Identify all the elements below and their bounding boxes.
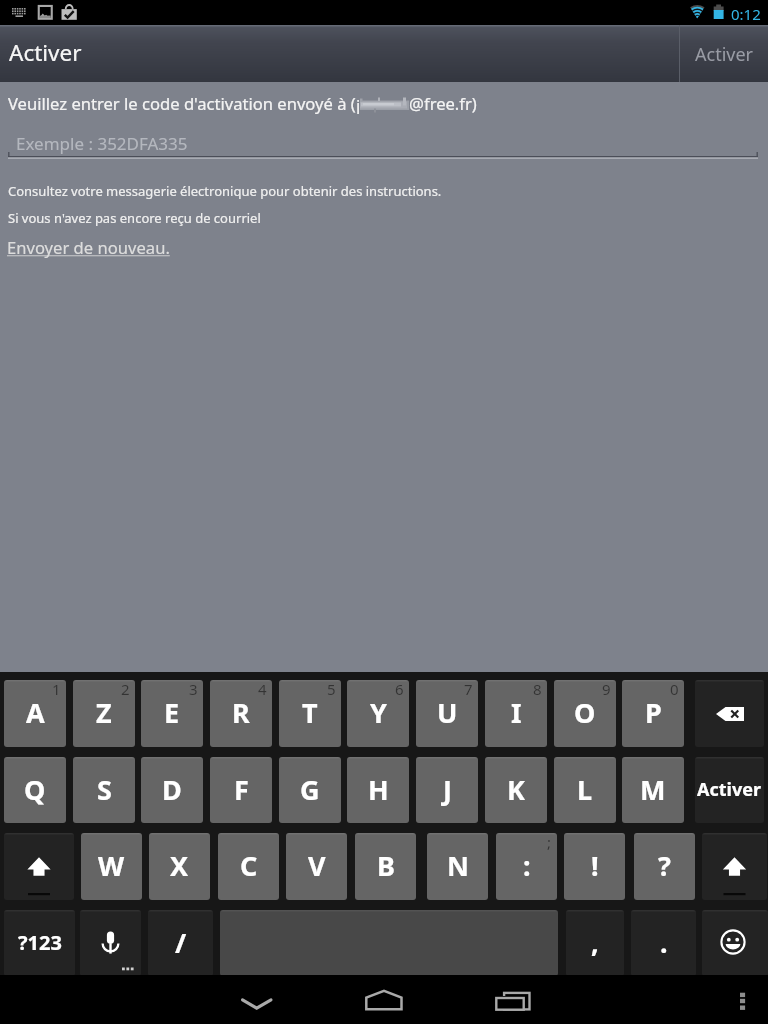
button[interactable]: Recents: [468, 975, 558, 1024]
staticText: @free.fr): [409, 92, 477, 115]
button[interactable]: C: [218, 833, 279, 900]
button[interactable]: [220, 910, 558, 976]
button[interactable]: Home: [339, 975, 429, 1024]
staticText: Si vous n'avez pas encore reçu de courri…: [8, 209, 261, 227]
staticText: J: [443, 771, 452, 808]
button[interactable]: 3: [141, 680, 203, 747]
staticText: !: [591, 847, 599, 884]
staticText: V: [308, 847, 326, 884]
staticText: Q: [24, 771, 46, 808]
button[interactable]: ?123: [4, 910, 75, 976]
button[interactable]: X: [149, 833, 210, 900]
staticText: W: [98, 847, 125, 884]
staticText: /: [175, 924, 187, 961]
button[interactable]: J: [416, 757, 478, 823]
button[interactable]: /: [148, 910, 213, 976]
staticText: B: [377, 847, 395, 884]
button[interactable]: V: [286, 833, 347, 900]
button[interactable]: Delete: [695, 680, 764, 747]
button[interactable]: W: [81, 833, 142, 900]
button[interactable]: D: [141, 757, 203, 823]
staticText: H: [368, 771, 389, 808]
button[interactable]: L: [554, 757, 616, 823]
staticText: Z: [96, 694, 112, 731]
button[interactable]: Shift: [702, 833, 767, 900]
staticText: 7: [464, 680, 473, 699]
staticText: D: [162, 771, 182, 808]
staticText: S: [97, 771, 112, 808]
button[interactable]: F: [210, 757, 272, 823]
staticText: 8: [533, 680, 542, 699]
button[interactable]: Voice input: [80, 910, 141, 976]
staticText: ?: [658, 847, 671, 884]
staticText: ,: [591, 924, 599, 961]
staticText: Exemple : 352DFA335: [16, 132, 188, 155]
button[interactable]: 2: [73, 680, 135, 747]
staticText: ;: [547, 833, 552, 852]
button[interactable]: 7: [416, 680, 478, 747]
button[interactable]: More options: [717, 975, 768, 1024]
staticText: Envoyer de nouveau.: [7, 236, 170, 259]
button[interactable]: M: [622, 757, 684, 823]
staticText: R: [232, 694, 250, 731]
button[interactable]: !: [564, 833, 625, 900]
staticText: Activer: [697, 777, 762, 802]
button[interactable]: ,: [566, 910, 624, 976]
staticText: Activer: [9, 37, 82, 68]
button[interactable]: B: [355, 833, 416, 900]
button[interactable]: N: [427, 833, 488, 900]
button[interactable]: S: [73, 757, 135, 823]
staticText: C: [240, 847, 258, 884]
button[interactable]: 1: [4, 680, 66, 747]
staticText: .: [660, 924, 668, 961]
staticText: Activer: [695, 42, 754, 67]
button[interactable]: 5: [279, 680, 341, 747]
button[interactable]: K: [485, 757, 547, 823]
staticText: P: [645, 694, 662, 731]
button[interactable]: 0: [622, 680, 684, 747]
staticText: 4: [258, 680, 267, 699]
staticText: X: [170, 847, 189, 884]
staticText: Consultez votre messagerie électronique …: [8, 182, 442, 200]
staticText: 1: [52, 680, 61, 699]
button[interactable]: 6: [347, 680, 409, 747]
staticText: I: [511, 694, 522, 731]
staticText: F: [234, 771, 249, 808]
button[interactable]: Hide keyboard: [212, 975, 302, 1024]
button[interactable]: H: [347, 757, 409, 823]
button[interactable]: Envoyer de nouveau.: [7, 236, 170, 259]
staticText: 6: [395, 680, 404, 699]
button[interactable]: 8: [485, 680, 547, 747]
staticText: j: [356, 94, 361, 114]
staticText: L: [577, 771, 593, 808]
button[interactable]: G: [279, 757, 341, 823]
staticText: 0: [670, 680, 679, 699]
staticText: U: [437, 694, 458, 731]
staticText: O: [574, 694, 596, 731]
staticText: Y: [370, 694, 387, 731]
staticText: G: [300, 771, 320, 808]
button[interactable]: 4: [210, 680, 272, 747]
staticText: :: [523, 847, 531, 884]
staticText: T: [302, 694, 318, 731]
button[interactable]: Activer: [695, 757, 764, 823]
button[interactable]: Shift: [4, 833, 74, 900]
staticText: 0:12: [731, 4, 761, 24]
staticText: K: [507, 771, 525, 808]
button[interactable]: ;: [496, 833, 557, 900]
staticText: A: [26, 694, 45, 731]
staticText: 2: [121, 680, 130, 699]
staticText: 3: [189, 680, 198, 699]
staticText: E: [164, 694, 180, 731]
staticText: ?123: [18, 929, 62, 956]
button[interactable]: ?: [634, 833, 695, 900]
button[interactable]: Q: [4, 757, 66, 823]
button[interactable]: Activer: [680, 25, 768, 82]
staticText: N: [447, 847, 469, 884]
staticText: 9: [602, 680, 611, 699]
staticText: M: [640, 771, 666, 808]
button[interactable]: Emoji: [702, 910, 768, 976]
staticText: 5: [327, 680, 336, 699]
button[interactable]: .: [631, 910, 696, 976]
button[interactable]: 9: [554, 680, 616, 747]
